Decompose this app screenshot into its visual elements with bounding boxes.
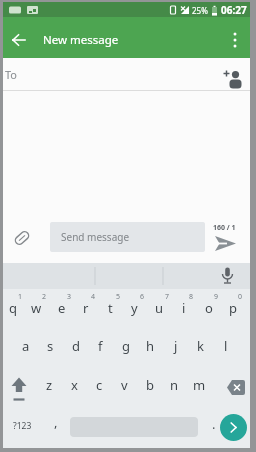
- button[interactable]: g: [114, 329, 137, 363]
- staticText: n: [170, 376, 179, 394]
- staticText: c: [96, 376, 103, 394]
- staticText: e: [58, 299, 66, 317]
- button[interactable]: y: [123, 291, 146, 325]
- button[interactable]: [221, 66, 245, 90]
- button[interactable]: k: [189, 329, 212, 363]
- staticText: b: [146, 376, 154, 394]
- button[interactable]: [226, 26, 244, 54]
- staticText: 06:27: [221, 3, 247, 17]
- staticText: k: [197, 337, 204, 355]
- staticText: 9: [214, 292, 219, 302]
- staticText: h: [146, 337, 155, 355]
- button[interactable]: p: [221, 291, 244, 325]
- button[interactable]: h: [139, 329, 162, 363]
- button[interactable]: [5, 26, 33, 54]
- button[interactable]: l: [214, 329, 237, 363]
- button[interactable]: c: [88, 368, 111, 402]
- button[interactable]: To: [3, 58, 250, 91]
- staticText: q: [9, 299, 17, 317]
- staticText: ,: [54, 413, 58, 431]
- button[interactable]: o: [197, 291, 220, 325]
- button[interactable]: a: [14, 329, 37, 363]
- staticText: y: [131, 299, 138, 317]
- staticText: f: [98, 337, 103, 355]
- button[interactable]: .: [200, 413, 228, 439]
- staticText: s: [47, 337, 54, 355]
- staticText: To: [5, 67, 18, 82]
- button[interactable]: [11, 227, 33, 249]
- staticText: 25%: [192, 5, 208, 16]
- staticText: l: [224, 337, 228, 355]
- button[interactable]: [216, 264, 238, 288]
- staticText: v: [121, 376, 128, 394]
- button[interactable]: j: [164, 329, 187, 363]
- button[interactable]: n: [163, 368, 186, 402]
- staticText: r: [83, 299, 89, 317]
- button[interactable]: ,: [43, 413, 68, 439]
- button[interactable]: s: [39, 329, 62, 363]
- staticText: u: [155, 299, 164, 317]
- button[interactable]: d: [64, 329, 87, 363]
- staticText: 1: [18, 292, 23, 302]
- staticText: z: [46, 376, 53, 394]
- button[interactable]: z: [38, 368, 61, 402]
- button[interactable]: f: [89, 329, 112, 363]
- staticText: o: [205, 299, 213, 317]
- staticText: 2: [42, 292, 47, 302]
- button[interactable]: b: [138, 368, 161, 402]
- staticText: Send message: [61, 230, 130, 244]
- staticText: 4: [91, 292, 96, 302]
- staticText: 5: [116, 292, 121, 302]
- button[interactable]: m: [188, 368, 211, 402]
- button[interactable]: e: [50, 291, 73, 325]
- staticText: 8: [189, 292, 194, 302]
- staticText: p: [229, 299, 237, 317]
- staticText: 0: [238, 292, 243, 302]
- staticText: ?123: [13, 420, 32, 432]
- button[interactable]: x: [63, 368, 86, 402]
- staticText: w: [31, 299, 42, 317]
- staticText: .: [212, 415, 216, 433]
- staticText: t: [108, 299, 113, 317]
- button[interactable]: [5, 375, 33, 403]
- button[interactable]: [220, 414, 247, 441]
- button[interactable]: [222, 375, 250, 399]
- staticText: 6: [140, 292, 145, 302]
- button[interactable]: Send message: [50, 222, 205, 252]
- staticText: j: [174, 337, 178, 355]
- staticText: 7: [165, 292, 170, 302]
- button[interactable]: u: [148, 291, 171, 325]
- staticText: x: [71, 376, 78, 394]
- staticText: 160 / 1: [213, 223, 236, 233]
- staticText: i: [182, 299, 186, 317]
- button[interactable]: r: [74, 291, 97, 325]
- staticText: g: [122, 337, 130, 355]
- button[interactable]: w: [25, 291, 48, 325]
- staticText: m: [193, 376, 206, 394]
- button[interactable]: [212, 234, 238, 252]
- staticText: New message: [43, 32, 119, 48]
- button[interactable]: v: [113, 368, 136, 402]
- button[interactable]: q: [1, 291, 24, 325]
- staticText: a: [22, 337, 30, 355]
- button[interactable]: ?123: [5, 413, 39, 439]
- button[interactable]: t: [99, 291, 122, 325]
- staticText: d: [72, 337, 80, 355]
- staticText: 3: [67, 292, 72, 302]
- button[interactable]: i: [172, 291, 195, 325]
